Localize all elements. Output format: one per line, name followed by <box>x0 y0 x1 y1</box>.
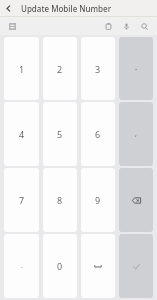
staticText: 6 <box>95 128 101 140</box>
button[interactable]: Voice input <box>120 20 133 33</box>
staticText: Update Mobile Number <box>21 3 112 14</box>
button[interactable]: 2 <box>43 37 77 100</box>
button[interactable]: 3 <box>81 37 115 100</box>
button[interactable]: Space <box>81 234 115 298</box>
button[interactable]: 6 <box>81 102 115 166</box>
staticText: 3 <box>95 63 101 75</box>
button[interactable]: Search <box>138 20 151 33</box>
staticText: - <box>135 64 138 74</box>
staticText: 0 <box>57 260 63 272</box>
staticText: 8 <box>57 194 63 206</box>
staticText: 1 <box>19 63 25 75</box>
button[interactable]: Keyboard settings <box>6 20 18 32</box>
button[interactable]: Clipboard <box>102 20 115 33</box>
button[interactable]: 7 <box>4 168 39 232</box>
staticText: 5 <box>57 128 63 140</box>
button[interactable]: 5 <box>43 102 77 166</box>
staticText: 4 <box>19 128 25 140</box>
button[interactable]: Backspace <box>119 168 153 232</box>
button[interactable]: 8 <box>43 168 77 232</box>
button[interactable]: 1 <box>4 37 39 100</box>
staticText: . <box>21 261 23 271</box>
button[interactable]: 4 <box>4 102 39 166</box>
staticText: 9 <box>95 194 101 206</box>
staticText: , <box>135 129 137 139</box>
staticText: 2 <box>57 63 63 75</box>
button[interactable]: 9 <box>81 168 115 232</box>
button[interactable]: Back <box>0 0 16 16</box>
staticText: 7 <box>19 194 25 206</box>
button[interactable]: 0 <box>43 234 77 298</box>
